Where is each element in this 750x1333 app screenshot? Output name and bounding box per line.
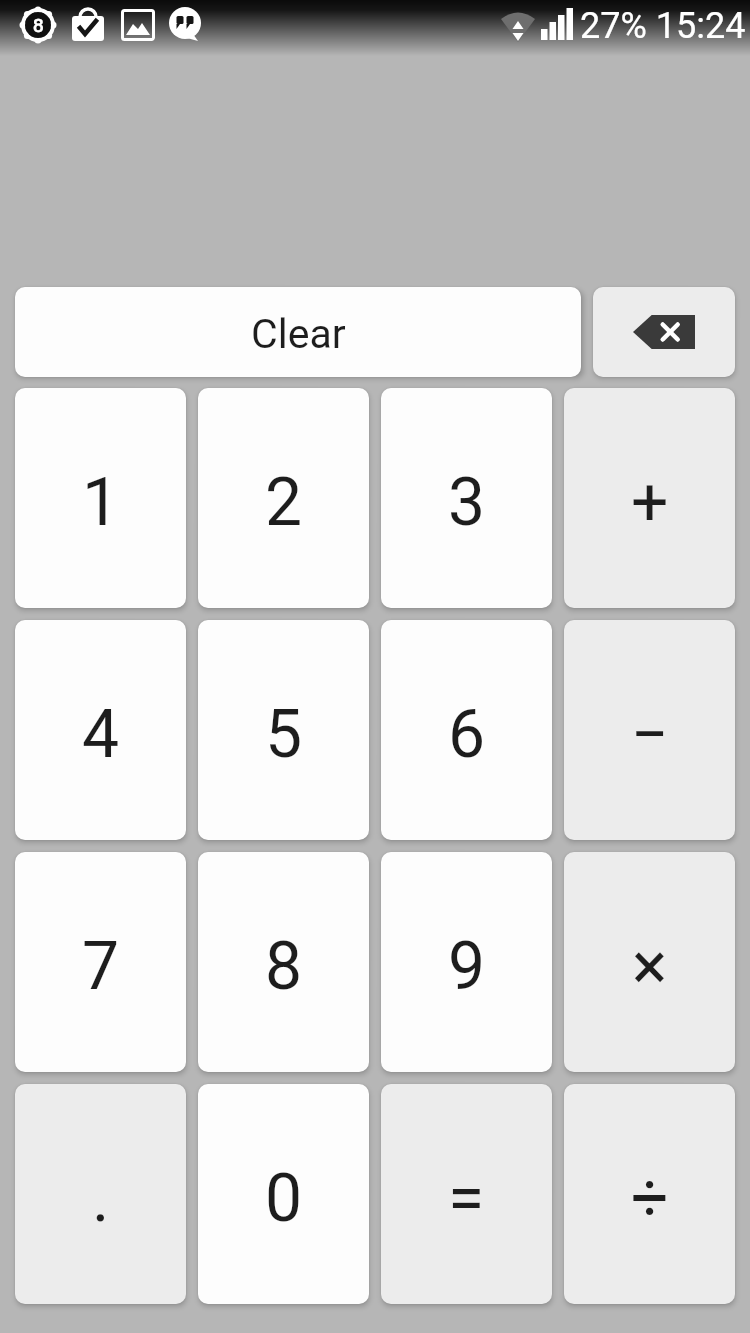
staticText: 1 bbox=[82, 464, 120, 541]
staticText: 6 bbox=[448, 696, 486, 773]
button[interactable]: 1 bbox=[15, 388, 186, 608]
staticText: 9 bbox=[448, 928, 486, 1005]
staticText: = bbox=[448, 1160, 485, 1237]
staticText: 5 bbox=[265, 696, 303, 773]
button[interactable]: Clear bbox=[15, 287, 581, 377]
button[interactable]: − bbox=[564, 620, 735, 840]
staticText: 2 bbox=[265, 464, 303, 541]
button[interactable]: × bbox=[564, 852, 735, 1072]
staticText: 4 bbox=[82, 696, 120, 773]
button[interactable]: 8 bbox=[198, 852, 369, 1072]
button[interactable]: 5 bbox=[198, 620, 369, 840]
staticText: 8 bbox=[33, 14, 44, 36]
staticText: 0 bbox=[265, 1160, 303, 1237]
button[interactable]: 0 bbox=[198, 1084, 369, 1304]
button[interactable]: 9 bbox=[381, 852, 552, 1072]
button[interactable]: 7 bbox=[15, 852, 186, 1072]
button[interactable]: + bbox=[564, 388, 735, 608]
button[interactable] bbox=[593, 287, 735, 377]
staticText: 3 bbox=[448, 464, 486, 541]
staticText: 27% 15:24 bbox=[580, 5, 746, 47]
staticText: . bbox=[92, 1160, 110, 1237]
staticText: ÷ bbox=[631, 1160, 669, 1237]
staticText: × bbox=[632, 928, 668, 1005]
staticText: − bbox=[631, 696, 669, 773]
button[interactable]: 6 bbox=[381, 620, 552, 840]
button[interactable]: 2 bbox=[198, 388, 369, 608]
button[interactable]: 3 bbox=[381, 388, 552, 608]
staticText: 8 bbox=[265, 928, 303, 1005]
button[interactable]: . bbox=[15, 1084, 186, 1304]
button[interactable]: 4 bbox=[15, 620, 186, 840]
staticText: Clear bbox=[251, 310, 346, 358]
button[interactable]: ÷ bbox=[564, 1084, 735, 1304]
staticText: + bbox=[631, 464, 669, 541]
button[interactable]: = bbox=[381, 1084, 552, 1304]
staticText: 7 bbox=[82, 928, 120, 1005]
